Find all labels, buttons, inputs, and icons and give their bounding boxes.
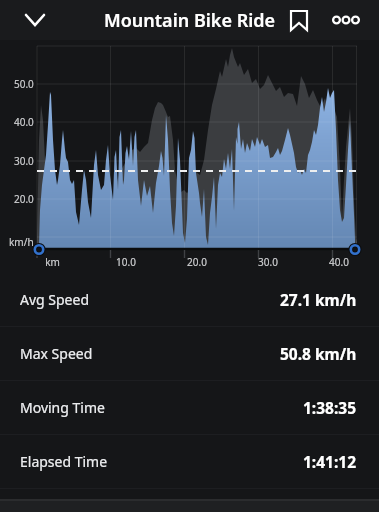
staticText: km xyxy=(45,255,60,269)
staticText: 10.0 xyxy=(116,255,136,269)
staticText: 40.0 xyxy=(329,255,349,269)
staticText: 27.1 km/h xyxy=(280,289,357,310)
staticText: 40.0 xyxy=(14,115,34,129)
staticText: Moving Time xyxy=(20,398,105,417)
staticText: Max Speed xyxy=(20,344,93,363)
staticText: 50.8 km/h xyxy=(280,343,357,364)
staticText: 1:38:35 xyxy=(303,397,357,418)
button[interactable]: Max Speed xyxy=(0,327,379,380)
staticText: Elapsed Time xyxy=(20,452,108,471)
button[interactable] xyxy=(329,4,363,36)
button[interactable]: Avg Speed xyxy=(0,273,379,326)
button[interactable] xyxy=(283,4,315,36)
staticText: 30.0 xyxy=(258,255,278,269)
staticText: 20.0 xyxy=(14,192,34,206)
button[interactable]: Moving Time xyxy=(0,381,379,434)
button[interactable]: 50.0 xyxy=(0,40,379,273)
staticText: 1:41:12 xyxy=(303,451,357,472)
staticText: Avg Speed xyxy=(20,290,90,309)
staticText: Mountain Bike Ride xyxy=(104,8,276,33)
staticText: 30.0 xyxy=(14,154,34,168)
button[interactable]: Elapsed Time xyxy=(0,435,379,488)
staticText: km/h xyxy=(9,235,34,249)
staticText: 50.0 xyxy=(14,77,34,91)
staticText: 20.0 xyxy=(187,255,207,269)
button[interactable] xyxy=(20,5,50,35)
